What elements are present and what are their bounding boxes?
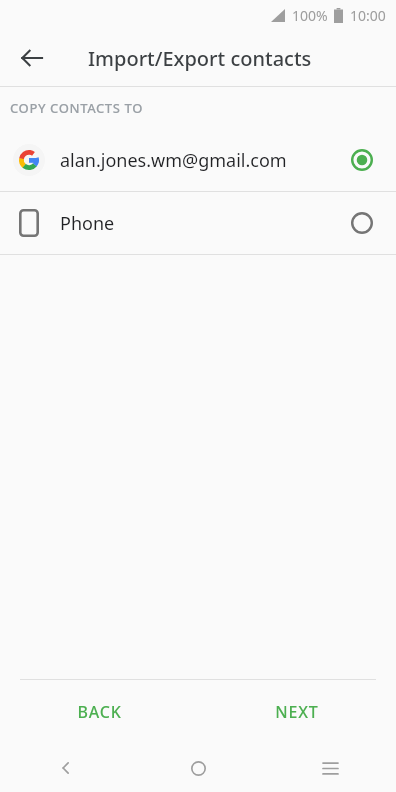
button[interactable]: Back [0, 744, 132, 792]
button[interactable]: Back [8, 34, 56, 82]
staticText: 100% [292, 6, 328, 25]
staticText: Phone [60, 211, 334, 236]
button[interactable]: Recent apps [264, 744, 396, 792]
button[interactable]: Selected [342, 140, 382, 180]
button[interactable]: Phone [0, 192, 396, 254]
button[interactable]: Home [132, 744, 264, 792]
staticText: BACK [77, 701, 122, 723]
button[interactable]: BACK [0, 680, 198, 744]
staticText: 10:00 [350, 6, 386, 25]
staticText: COPY CONTACTS TO [10, 99, 143, 117]
staticText: alan.jones.wm@gmail.com [60, 148, 334, 173]
staticText: Import/Export contacts [88, 45, 312, 72]
button[interactable]: NEXT [198, 680, 396, 744]
button[interactable]: Not selected [342, 203, 382, 243]
staticText: NEXT [275, 701, 319, 723]
button[interactable]: alan.jones.wm@gmail.com [0, 129, 396, 191]
